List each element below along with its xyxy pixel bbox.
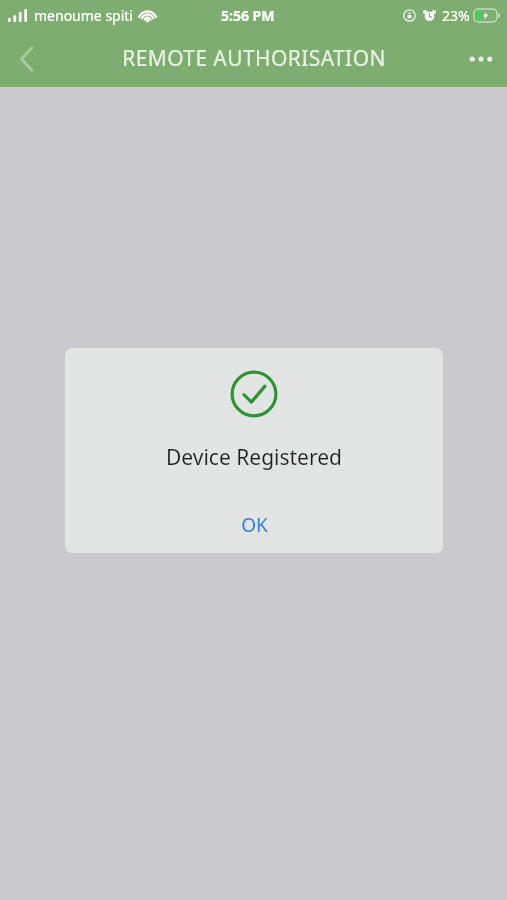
button[interactable]: OK — [65, 502, 443, 548]
staticText: OK — [241, 512, 268, 538]
button[interactable]: More options — [455, 33, 507, 85]
staticText: Device Registered — [166, 443, 342, 472]
button[interactable]: Back — [0, 33, 52, 85]
staticText: 5:56 PM — [221, 6, 275, 25]
staticText: menoume spiti — [34, 6, 133, 25]
staticText: 23% — [442, 6, 470, 25]
staticText: REMOTE AUTHORISATION — [122, 44, 386, 73]
